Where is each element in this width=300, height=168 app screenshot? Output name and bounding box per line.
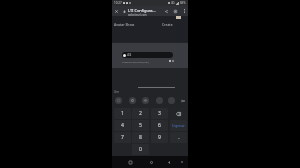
staticText: 4.5 [127,53,132,57]
button[interactable]: Close [113,8,120,15]
button[interactable]: 4.5 [122,52,173,58]
staticText: Ingresar [172,124,185,128]
staticText: 8 [139,134,142,141]
button[interactable]: Home [147,158,155,166]
staticText: Graphics and tools (99+) [122,60,150,63]
staticText: 7 [121,134,124,141]
button[interactable]: 7 [114,132,131,143]
button[interactable]: Ingresar [170,120,187,131]
button[interactable]: . [170,132,187,143]
staticText: websiteurl.com [128,13,147,17]
staticText: 1 [121,110,124,117]
staticText: 4 [121,122,124,129]
button[interactable]: Back [165,158,173,166]
staticText: 4G [171,1,175,5]
staticText: 68% [180,1,186,5]
button[interactable]: Settings [156,97,163,104]
staticText: 5 [139,122,142,129]
button[interactable]: Stickers [142,97,149,104]
button[interactable]: 2 [132,108,149,119]
button[interactable]: 9 [151,132,168,143]
button[interactable]: Recent apps [126,158,134,166]
staticText: 2 [139,110,142,117]
button[interactable]: 0 [132,144,149,155]
button[interactable]: 8 [132,132,149,143]
button[interactable]: Clipboard [129,97,136,104]
button[interactable]: Avatar Show [114,22,135,26]
button[interactable]: More options [181,8,187,14]
staticText: 0 [139,146,142,153]
button[interactable]: 6 [151,120,168,131]
button[interactable]: Open in browser [172,8,178,14]
button[interactable]: Share [163,8,169,14]
staticText: 6 [158,122,161,129]
button[interactable]: Backspace [170,108,187,119]
button[interactable]: Expand toolbar [180,98,185,103]
button[interactable]: Google search [115,97,122,104]
staticText: . [178,134,180,141]
button[interactable]: 3 [151,108,168,119]
staticText: Gm [114,90,119,94]
button[interactable]: Hide keyboard [179,159,185,165]
button[interactable]: 5 [132,120,149,131]
button[interactable]: 4 [114,120,131,131]
staticText: 10:27 [114,1,122,5]
button[interactable]: Create [162,22,173,26]
button[interactable]: 1 [114,108,131,119]
staticText: 9 [158,134,161,141]
button[interactable]: Voice input [168,97,175,104]
staticText: 3 [158,110,161,117]
staticText: LTI Configura… [128,8,156,13]
